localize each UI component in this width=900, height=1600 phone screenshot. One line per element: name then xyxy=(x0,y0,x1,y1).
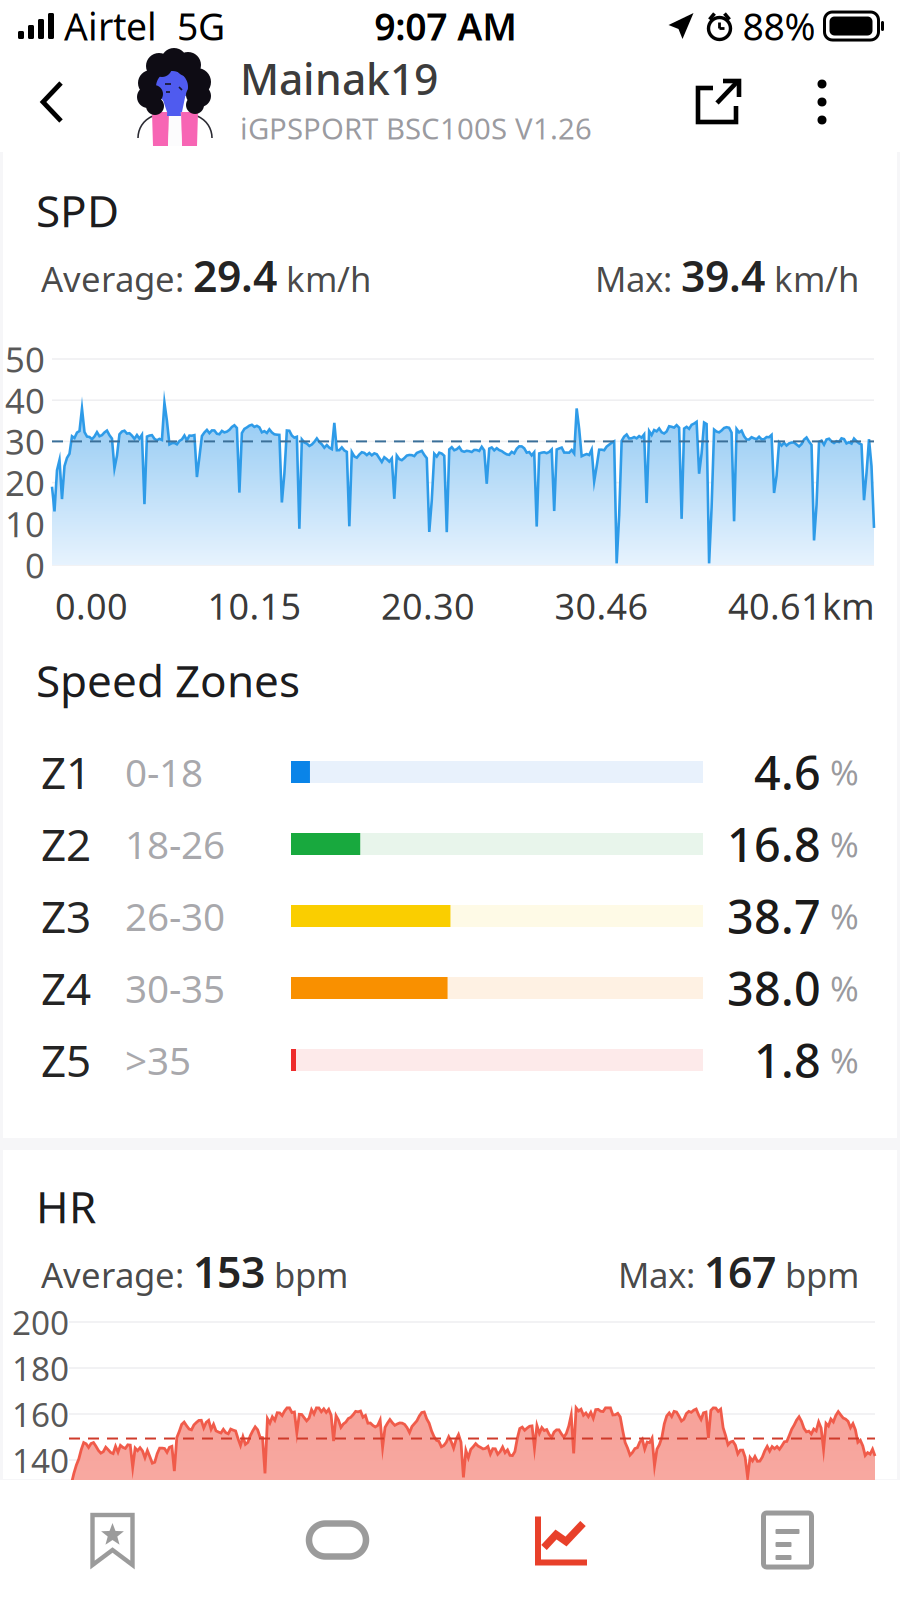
staticText: 20.30 xyxy=(381,582,475,630)
staticText: Z5 xyxy=(41,1031,91,1089)
staticText: Average: xyxy=(41,1251,193,1297)
staticText: % xyxy=(821,1037,859,1083)
staticText: HR xyxy=(36,1177,96,1235)
button[interactable]: Records xyxy=(675,1480,900,1600)
staticText: 38.7 xyxy=(727,885,821,947)
staticText: Z1 xyxy=(41,743,91,801)
staticText: 50 xyxy=(5,336,45,382)
staticText: Mainak19 xyxy=(240,50,438,107)
staticText: 20 xyxy=(5,460,45,506)
staticText: % xyxy=(821,749,859,795)
staticText: 40.61km xyxy=(728,582,875,630)
button[interactable]: More options xyxy=(782,52,862,152)
staticText: 9:07 AM xyxy=(374,1,517,51)
staticText: km/h xyxy=(277,255,371,301)
staticText: 0.00 xyxy=(55,582,128,630)
staticText: 160 xyxy=(12,1392,69,1436)
staticText: Max: xyxy=(595,255,681,301)
button[interactable]: Share xyxy=(670,52,766,152)
staticText: 10.15 xyxy=(207,582,301,630)
button[interactable]: Statistics xyxy=(450,1480,675,1600)
button[interactable]: Saved xyxy=(0,1480,225,1600)
staticText: 29.4 xyxy=(193,247,277,304)
staticText: % xyxy=(821,965,859,1011)
staticText: 167 xyxy=(704,1243,776,1300)
staticText: iGPSPORT BSC100S V1.26 xyxy=(240,109,592,148)
staticText: bpm xyxy=(776,1251,859,1297)
staticText: 40 xyxy=(5,377,45,423)
staticText: Z4 xyxy=(41,959,91,1017)
staticText: 38.0 xyxy=(727,957,821,1019)
button[interactable]: Devices xyxy=(225,1480,450,1600)
staticText: 0-18 xyxy=(125,746,203,798)
staticText: 140 xyxy=(12,1438,69,1482)
staticText: km/h xyxy=(765,255,859,301)
staticText: 88% xyxy=(742,1,815,51)
staticText: 1.8 xyxy=(754,1029,821,1091)
staticText: 39.4 xyxy=(681,247,765,304)
staticText: Z3 xyxy=(41,887,91,945)
staticText: 18-26 xyxy=(125,818,225,870)
staticText: 30.46 xyxy=(554,582,648,630)
staticText: 5G xyxy=(157,1,225,51)
staticText: % xyxy=(821,821,859,867)
staticText: 4.6 xyxy=(754,741,821,803)
button[interactable]: Back xyxy=(10,52,94,152)
staticText: SPD xyxy=(36,181,119,239)
staticText: 0 xyxy=(25,542,45,588)
staticText: 26-30 xyxy=(125,890,225,942)
staticText: Airtel xyxy=(54,1,157,51)
staticText: 10 xyxy=(5,501,45,547)
staticText: 153 xyxy=(193,1243,265,1300)
staticText: 200 xyxy=(12,1300,69,1344)
staticText: 16.8 xyxy=(727,813,821,875)
staticText: % xyxy=(821,893,859,939)
staticText: Z2 xyxy=(41,815,91,873)
staticText: 30 xyxy=(5,418,45,464)
staticText: >35 xyxy=(125,1034,191,1086)
staticText: 180 xyxy=(12,1346,69,1390)
staticText: bpm xyxy=(265,1251,348,1297)
staticText: Max: xyxy=(618,1251,704,1297)
staticText: Speed Zones xyxy=(36,651,300,709)
staticText: Average: xyxy=(41,255,193,301)
staticText: 30-35 xyxy=(125,962,225,1014)
